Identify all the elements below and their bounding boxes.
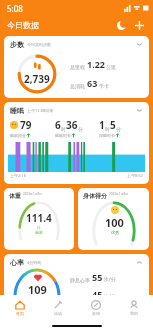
staticText: 优秀 bbox=[111, 230, 119, 235]
button[interactable]: Sleep mode bbox=[114, 18, 128, 32]
staticText: 111.4 bbox=[26, 211, 52, 225]
staticText: 身体得分 bbox=[83, 192, 107, 200]
staticText: 63 bbox=[87, 77, 98, 89]
staticText: 体重 bbox=[9, 192, 21, 200]
staticText: 109 bbox=[28, 282, 47, 297]
button[interactable]: 运动 bbox=[39, 295, 77, 321]
staticText: 睡眠 bbox=[10, 106, 24, 115]
staticText: 4分钟前 bbox=[27, 260, 42, 265]
staticText: 斤 bbox=[37, 225, 41, 230]
staticText: 心率 bbox=[10, 258, 24, 267]
staticText: 45 bbox=[92, 288, 103, 300]
staticText: 1.22 bbox=[87, 58, 105, 70]
button[interactable]: 心率 bbox=[4, 254, 149, 304]
button[interactable]: 我的 bbox=[115, 295, 153, 321]
staticText: 总消耗 bbox=[70, 83, 85, 89]
staticText: 时 bbox=[105, 126, 110, 132]
staticText: 步数 bbox=[10, 40, 24, 49]
staticText: 睡眠时长 bbox=[55, 133, 71, 138]
staticText: 今日数据 bbox=[7, 20, 39, 30]
staticText: 79 bbox=[20, 118, 32, 132]
staticText: 1 bbox=[99, 118, 105, 132]
staticText: 100 bbox=[105, 215, 124, 230]
staticText: 2023年1月8日 bbox=[109, 192, 129, 196]
button[interactable]: Add bbox=[132, 18, 146, 32]
staticText: 时 bbox=[61, 126, 66, 132]
staticText: 首页 bbox=[16, 311, 24, 316]
staticText: 运动 bbox=[54, 311, 62, 316]
staticText: 静息心率 bbox=[70, 277, 90, 283]
staticText: 分 bbox=[116, 126, 121, 132]
staticText: 我的 bbox=[130, 311, 138, 316]
staticText: 次/分 bbox=[104, 276, 116, 283]
button[interactable]: 体重 bbox=[4, 188, 74, 250]
staticText: 5:08 bbox=[7, 3, 23, 14]
staticText: 发现 bbox=[92, 311, 100, 316]
staticText: 2023年1月8日 bbox=[23, 192, 43, 196]
staticText: 上午11:08结束 bbox=[27, 108, 54, 113]
staticText: 今日实时步数 bbox=[27, 42, 51, 47]
staticText: 次/分 bbox=[104, 293, 116, 300]
staticText: 千卡 bbox=[99, 83, 109, 89]
staticText: 标准 bbox=[35, 230, 43, 234]
staticText: 上午2:16 bbox=[10, 173, 26, 178]
staticText: 5 bbox=[110, 118, 116, 132]
staticText: 睡眠得分 bbox=[10, 133, 26, 138]
staticText: 上午8:52 bbox=[127, 173, 143, 178]
staticText: 55 bbox=[92, 271, 103, 283]
button[interactable]: 首页 bbox=[0, 295, 39, 321]
staticText: 6 bbox=[55, 118, 61, 132]
button[interactable]: 睡眠 bbox=[4, 102, 149, 184]
button[interactable]: 发现 bbox=[77, 295, 115, 321]
staticText: 36 bbox=[66, 118, 78, 132]
staticText: 分 bbox=[78, 126, 83, 132]
staticText: 2,739 bbox=[24, 72, 50, 86]
staticText: 深睡时长 bbox=[99, 133, 115, 138]
staticText: 公里 bbox=[106, 64, 116, 70]
staticText: 总里程 bbox=[70, 64, 85, 70]
button[interactable]: 步数 bbox=[4, 36, 149, 98]
button[interactable]: 身体得分 bbox=[78, 188, 149, 250]
